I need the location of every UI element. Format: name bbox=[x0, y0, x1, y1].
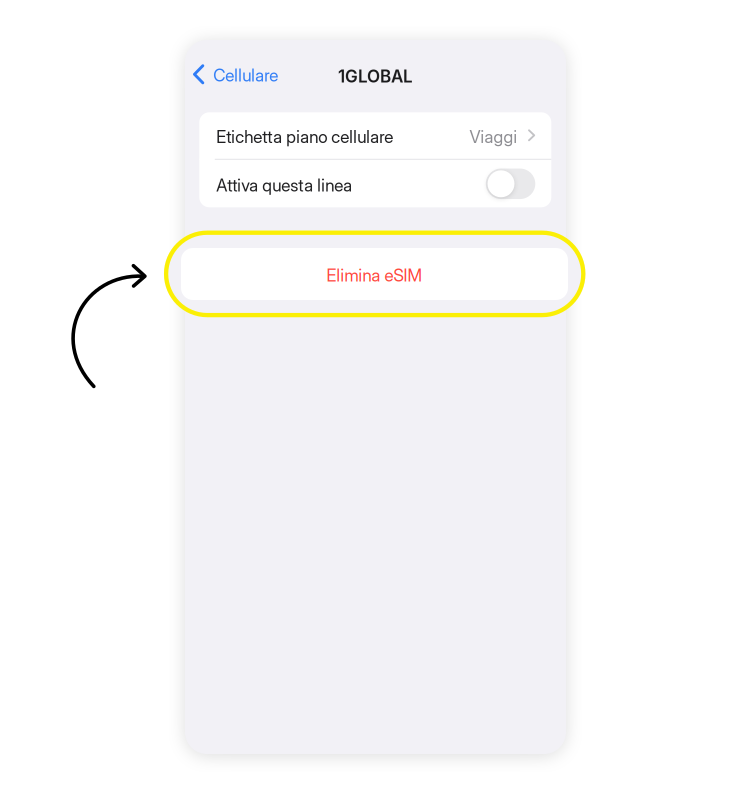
staticText: Cellulare bbox=[213, 65, 278, 86]
staticText: Viaggi bbox=[469, 126, 517, 147]
staticText: Attiva questa linea bbox=[216, 175, 352, 195]
button[interactable]: Attiva questa linea bbox=[199, 160, 551, 208]
staticText: Elimina eSIM bbox=[326, 265, 422, 286]
staticText: Etichetta piano cellulare bbox=[216, 126, 393, 147]
button[interactable]: Cellulare bbox=[185, 57, 287, 92]
button[interactable]: Etichetta piano cellulare bbox=[199, 112, 551, 159]
staticText: 1GLOBAL bbox=[338, 66, 413, 86]
button[interactable]: Elimina eSIM bbox=[181, 248, 568, 300]
